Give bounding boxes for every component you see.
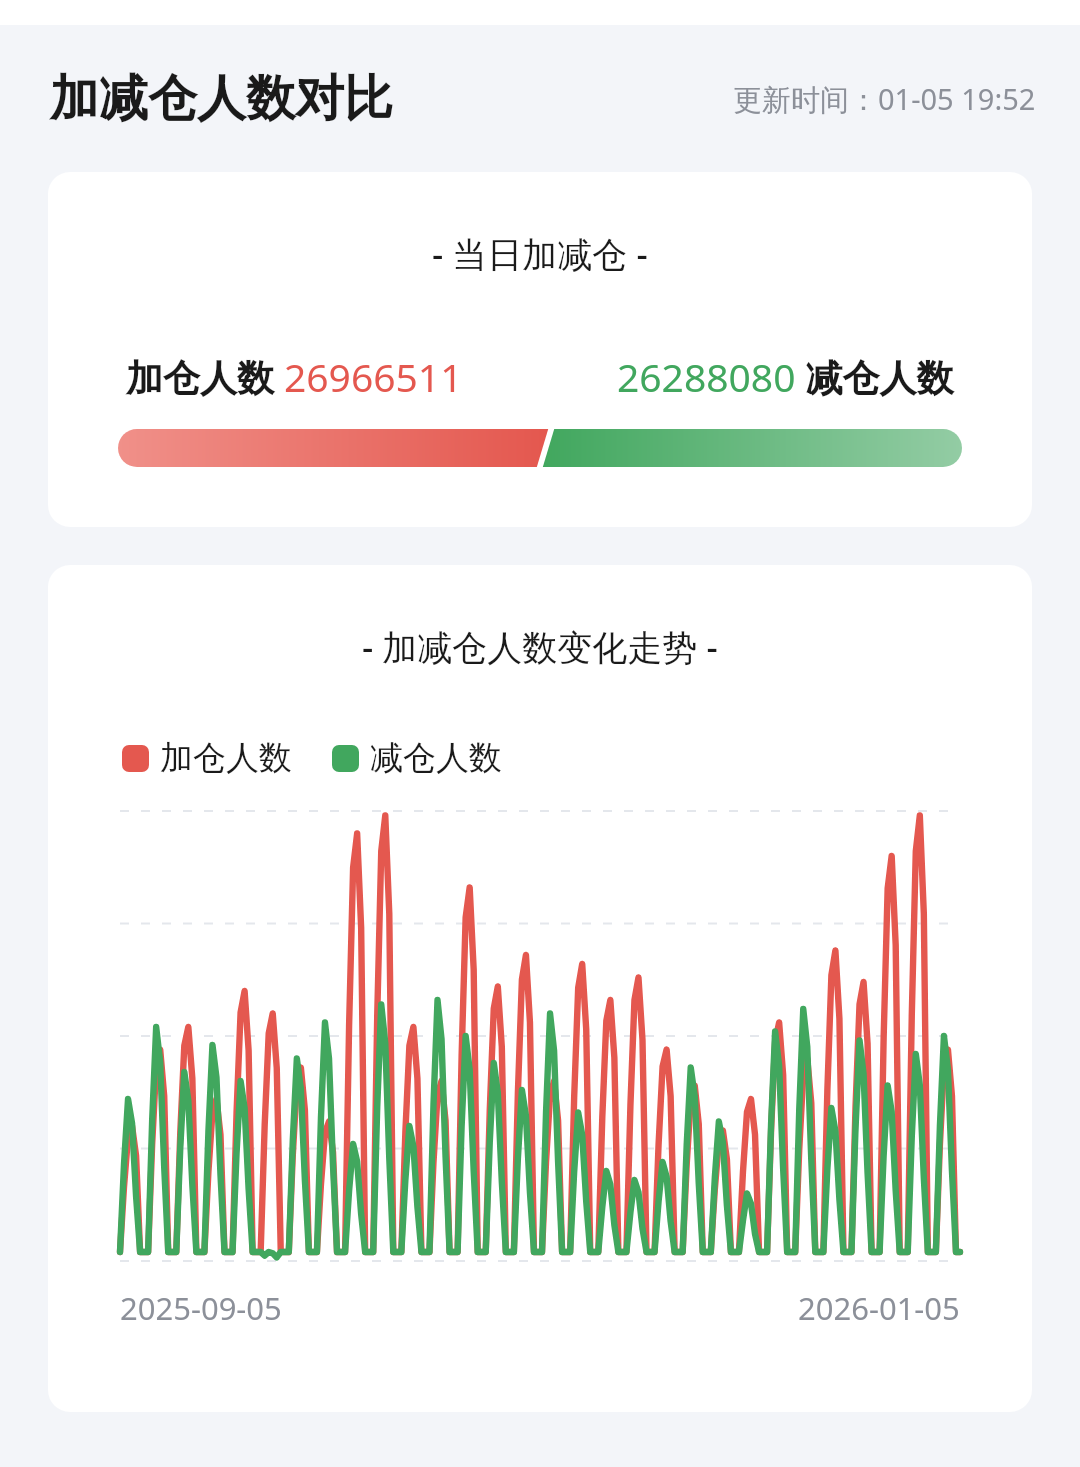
staticText: 减仓人数 [370,737,502,779]
staticText: 加仓人数 [126,351,284,402]
staticText: 减仓人数 [796,351,954,402]
staticText: 26966511 [284,350,463,403]
staticText: 加仓人数 [160,737,292,779]
staticText: - 加减仓人数变化走势 - [362,623,718,671]
staticText: 更新时间：01-05 19:52 [733,79,1036,119]
staticText: - 当日加减仓 - [432,230,648,278]
staticText: 加减仓人数对比 [50,68,393,130]
button[interactable]: - 当日加减仓 - [48,172,1032,527]
staticText: 2026-01-05 [798,1287,960,1329]
staticText: 2025-09-05 [120,1287,282,1329]
staticText: 26288080 [617,350,796,403]
button[interactable]: - 加减仓人数变化走势 - [48,565,1032,1412]
